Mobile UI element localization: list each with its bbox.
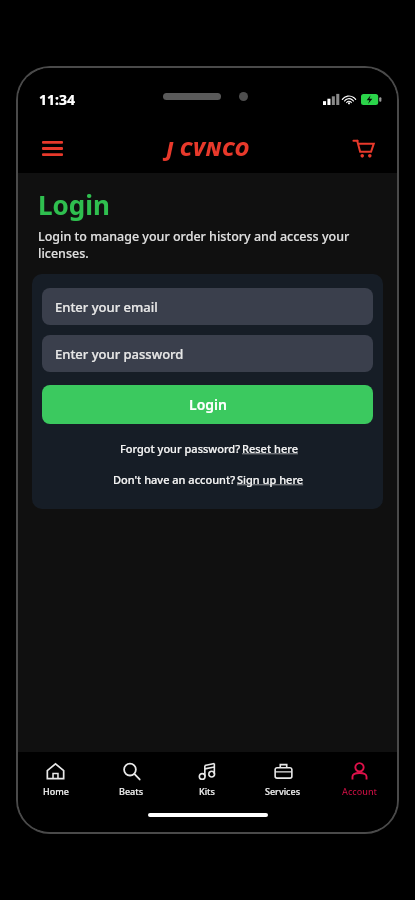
button[interactable]: Beats — [93, 752, 169, 806]
button[interactable]: Home — [18, 752, 93, 806]
staticText: Beats — [119, 785, 144, 797]
button[interactable]: Cart — [341, 126, 385, 170]
button[interactable]: Menu — [30, 126, 74, 170]
staticText: Home — [43, 785, 69, 797]
button[interactable]: Kits — [169, 752, 245, 806]
staticText: Kits — [199, 785, 215, 797]
staticText: Enter your password — [55, 345, 184, 363]
button[interactable]: Services — [245, 752, 321, 806]
staticText: Sign up here — [237, 472, 304, 487]
staticText: Account — [342, 785, 377, 797]
staticText: Enter your email — [55, 298, 158, 316]
button[interactable]: Account — [321, 752, 397, 806]
button[interactable]: Don't have an account? — [42, 472, 373, 487]
button[interactable]: Enter your email — [42, 288, 373, 325]
staticText: Login — [38, 187, 110, 222]
staticText: Login — [189, 395, 227, 414]
button[interactable]: Forgot your password? — [42, 441, 373, 456]
staticText: Services — [265, 785, 301, 797]
staticText: Forgot your password? — [118, 441, 242, 456]
button[interactable]: Login — [42, 385, 373, 424]
button[interactable]: Enter your password — [42, 335, 373, 372]
staticText: Don't have an account? — [111, 472, 237, 487]
staticText: 11:34 — [39, 90, 75, 109]
staticText: Login to manage your order history and a… — [38, 228, 379, 262]
staticText: J CVNCO — [166, 135, 250, 162]
staticText: Reset here — [242, 441, 298, 456]
